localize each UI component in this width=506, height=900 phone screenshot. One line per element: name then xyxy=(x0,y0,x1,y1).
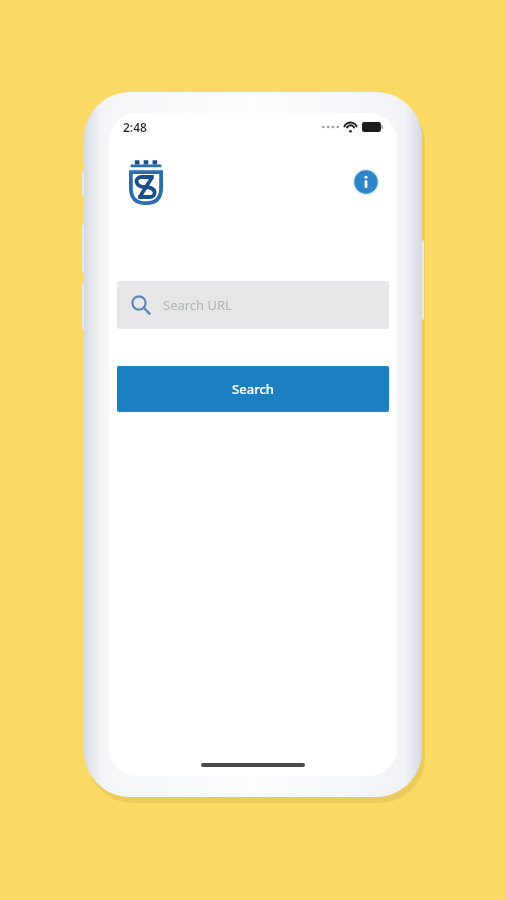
staticText: Search URL xyxy=(163,296,232,314)
button[interactable]: Search xyxy=(117,366,389,412)
button[interactable]: App logo xyxy=(119,155,173,209)
button[interactable]: Information xyxy=(349,165,383,199)
staticText: Search xyxy=(232,380,274,398)
staticText: 2:48 xyxy=(123,119,147,135)
button[interactable]: Search URL xyxy=(117,281,389,329)
